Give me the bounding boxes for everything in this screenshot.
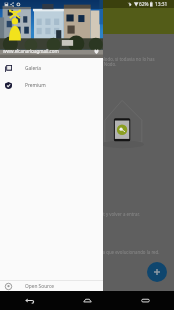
staticText: Si deseas cambiar de rol, deberas hacer … <box>2 211 169 217</box>
staticText: Gracias por ayudarnos, seguimos trabajan… <box>2 249 169 255</box>
staticText: 62% <box>139 1 149 8</box>
button[interactable]: Premium <box>0 77 103 94</box>
button[interactable]: Open Source <box>0 281 103 291</box>
button[interactable]: Back <box>0 291 58 310</box>
staticText: Bienvenido a la app. Si aun no has cread… <box>5 56 169 67</box>
button[interactable]: Home <box>58 291 116 310</box>
staticText: Open Source <box>25 283 55 290</box>
button[interactable]: Galería <box>0 60 103 77</box>
staticText: Galería <box>25 65 42 72</box>
staticText: 13:31 <box>155 1 168 8</box>
button[interactable]: Add <box>147 262 167 282</box>
button[interactable]: Recents <box>116 291 174 310</box>
staticText: www.elcanarioagmail.com <box>3 48 59 54</box>
staticText: Premium <box>25 82 46 89</box>
